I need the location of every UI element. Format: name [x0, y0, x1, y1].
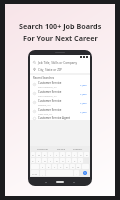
button[interactable]: t	[54, 152, 59, 157]
staticText: b	[66, 165, 68, 168]
staticText: Remote, US	[38, 104, 51, 107]
button[interactable]: Search	[30, 59, 90, 66]
staticText: r	[50, 153, 51, 156]
staticText: k	[74, 159, 76, 162]
staticText: customer	[37, 147, 49, 150]
staticText: q	[32, 153, 34, 156]
staticText: City, State or ZIP	[38, 68, 62, 72]
other: Location	[33, 68, 36, 71]
staticText: a	[32, 159, 34, 162]
staticText: s	[38, 159, 40, 162]
button[interactable]: z	[40, 164, 45, 169]
button[interactable]: b	[64, 164, 69, 169]
button[interactable]: v	[58, 164, 63, 169]
button[interactable]: Customer Service Agent	[30, 116, 90, 120]
staticText: San Francisco, CA	[38, 86, 57, 89]
button[interactable]: d	[42, 158, 47, 163]
staticText: m	[77, 165, 80, 168]
staticText: h	[62, 159, 64, 162]
staticText: Recent Searches	[33, 76, 55, 80]
staticText: 3 Jobs	[80, 92, 87, 95]
staticText: n	[72, 165, 74, 168]
staticText: 3 Jobs	[80, 110, 87, 113]
button[interactable]: s	[36, 158, 41, 163]
button[interactable]: a	[31, 158, 35, 163]
button[interactable]: p	[84, 152, 89, 157]
button[interactable]: r	[48, 152, 53, 157]
other: Search	[33, 61, 36, 64]
staticText: Customer Service	[38, 81, 62, 85]
button[interactable]: n	[70, 164, 75, 169]
button[interactable]: o	[78, 152, 83, 157]
button[interactable]: x	[46, 164, 51, 169]
button[interactable]: m	[76, 164, 81, 169]
button[interactable]: j	[66, 158, 71, 163]
button[interactable]: Customer Service	[30, 107, 90, 116]
staticText: San Francisco, CA	[38, 95, 57, 98]
staticText: New York, NY	[38, 113, 53, 116]
button[interactable]: Customer Service	[30, 80, 90, 89]
staticText: Search 100+ Job Boards	[19, 21, 102, 31]
staticText: .	[76, 172, 77, 175]
staticText: Customer Service Representative	[38, 90, 79, 94]
button[interactable]: k	[72, 158, 77, 163]
button[interactable]: c	[52, 164, 57, 169]
button[interactable]: Location	[30, 66, 90, 73]
staticText: l	[80, 159, 81, 162]
staticText: i	[74, 153, 75, 156]
button[interactable]: l	[78, 158, 83, 163]
button[interactable]: Customer Service	[30, 98, 90, 107]
button[interactable]: y	[60, 152, 65, 157]
button[interactable]: e	[42, 152, 47, 157]
staticText: y	[62, 153, 64, 156]
button[interactable]: i	[72, 152, 77, 157]
button[interactable]: w	[36, 152, 41, 157]
button[interactable]: g	[54, 158, 59, 163]
button[interactable]: customer	[36, 147, 50, 150]
button[interactable]: q	[31, 152, 35, 157]
button[interactable]: Search	[83, 171, 87, 175]
staticText: d	[44, 159, 46, 162]
staticText: j	[68, 159, 69, 162]
button[interactable]: Customer Service Representative	[30, 89, 90, 98]
staticText: o	[80, 153, 82, 156]
staticText: Customer Service	[38, 108, 62, 112]
staticText: u	[68, 153, 70, 156]
staticText: x	[48, 165, 50, 168]
staticText: e	[44, 153, 46, 156]
button[interactable]: service	[56, 147, 67, 150]
staticText: z	[42, 165, 44, 168]
staticText: For Your Next Career	[23, 33, 98, 43]
staticText: p	[86, 153, 88, 156]
staticText: w	[38, 153, 40, 156]
staticText: c	[54, 165, 56, 168]
button[interactable]: h	[60, 158, 65, 163]
staticText: v	[60, 165, 62, 168]
button[interactable]: f	[48, 158, 53, 163]
button[interactable]: support	[72, 147, 84, 150]
staticText: t	[56, 153, 57, 156]
button[interactable]: u	[66, 152, 71, 157]
staticText: Customer Service	[38, 99, 62, 103]
staticText: service	[57, 147, 66, 150]
staticText: 3 Jobs	[80, 83, 87, 86]
staticText: support	[73, 147, 83, 150]
button[interactable]: ?123	[31, 170, 39, 176]
staticText: 3 Jobs	[80, 101, 87, 104]
staticText: g	[56, 159, 58, 162]
staticText: Customer Service Agent	[38, 116, 71, 120]
staticText: Job Title, Skills or Company	[38, 61, 78, 65]
staticText: ?123	[32, 172, 38, 175]
staticText: f	[50, 159, 51, 162]
